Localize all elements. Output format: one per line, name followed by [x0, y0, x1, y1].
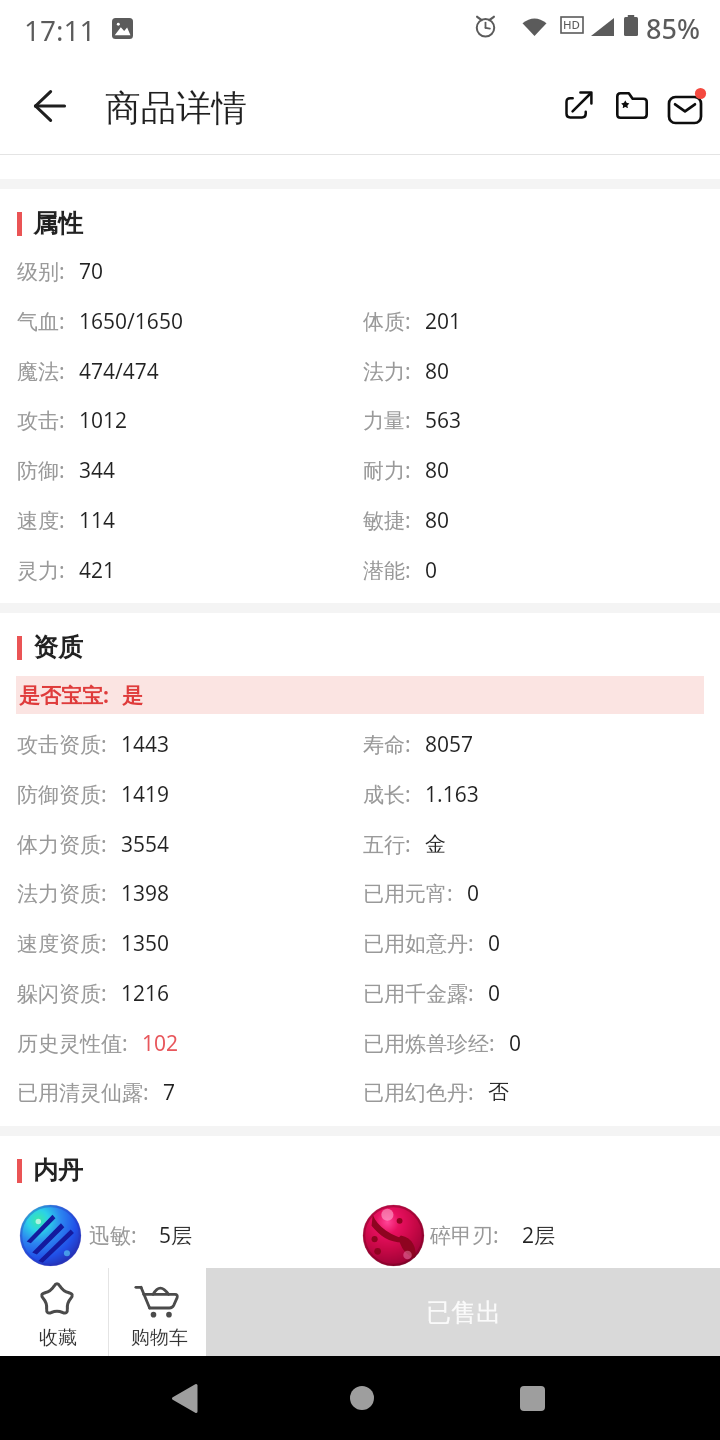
button[interactable]: 收藏: [0, 1268, 108, 1356]
staticText: 成长:: [363, 780, 411, 809]
staticText: 潜能:: [363, 556, 411, 585]
staticText: 114: [79, 506, 116, 535]
staticText: 3554: [121, 830, 170, 859]
staticText: 攻击资质:: [17, 730, 107, 759]
staticText: 魔法:: [17, 357, 65, 386]
button[interactable]: Share: [551, 75, 606, 135]
staticText: 躲闪资质:: [17, 979, 107, 1008]
staticText: 5层: [159, 1221, 193, 1250]
staticText: 70: [79, 257, 104, 286]
staticText: 已用幻色丹:: [363, 1078, 474, 1107]
staticText: 80: [425, 456, 450, 485]
button[interactable]: 购物车: [109, 1268, 206, 1356]
staticText: 8057: [425, 730, 474, 759]
staticText: 0: [425, 556, 438, 585]
staticText: 0: [488, 929, 501, 958]
staticText: 金: [425, 831, 446, 857]
staticText: 474/474: [79, 357, 159, 386]
staticText: 五行:: [363, 830, 411, 859]
staticText: 1350: [121, 929, 170, 958]
staticText: 灵力:: [17, 556, 65, 585]
staticText: 1.163: [425, 780, 479, 809]
staticText: 耐力:: [363, 456, 411, 485]
staticText: 碎甲刃:: [430, 1221, 499, 1250]
staticText: 0: [488, 979, 501, 1008]
staticText: 421: [79, 556, 116, 585]
staticText: 85%: [646, 10, 700, 47]
staticText: 迅敏:: [89, 1221, 137, 1250]
staticText: 级别:: [17, 257, 65, 286]
staticText: 已用元宵:: [363, 879, 453, 908]
button[interactable]: Favorites: [604, 75, 659, 135]
staticText: 1419: [121, 780, 170, 809]
button[interactable]: Recents: [500, 1366, 564, 1430]
staticText: 是否宝宝:: [19, 681, 109, 710]
button[interactable]: Messages: [657, 71, 713, 137]
staticText: 80: [425, 357, 450, 386]
staticText: 体力资质:: [17, 830, 107, 859]
staticText: 80: [425, 506, 450, 535]
staticText: 1216: [121, 979, 170, 1008]
staticText: 1398: [121, 879, 170, 908]
staticText: 已用千金露:: [363, 979, 474, 1008]
staticText: 体质:: [363, 307, 411, 336]
staticText: 已用清灵仙露:: [17, 1078, 149, 1107]
staticText: 历史灵性值:: [17, 1029, 128, 1058]
staticText: 已用如意丹:: [363, 929, 474, 958]
staticText: 购物车: [131, 1326, 188, 1350]
staticText: 攻击:: [17, 406, 65, 435]
staticText: 7: [163, 1078, 176, 1107]
staticText: 寿命:: [363, 730, 411, 759]
staticText: 2层: [522, 1221, 556, 1250]
staticText: 力量:: [363, 406, 411, 435]
staticText: 商品详情: [105, 86, 247, 131]
staticText: 1012: [79, 406, 128, 435]
staticText: 收藏: [39, 1326, 77, 1350]
staticText: 已售出: [426, 1297, 501, 1328]
staticText: 102: [142, 1029, 179, 1058]
staticText: 速度资质:: [17, 929, 107, 958]
staticText: 1650/1650: [79, 307, 183, 336]
staticText: 344: [79, 456, 116, 485]
staticText: 1443: [121, 730, 170, 759]
staticText: 防御:: [17, 456, 65, 485]
staticText: 属性: [33, 208, 83, 239]
button[interactable]: Back: [152, 1366, 216, 1430]
staticText: 否: [488, 1079, 509, 1105]
staticText: 资质: [33, 632, 83, 663]
staticText: 是: [122, 683, 143, 709]
staticText: 已用炼兽珍经:: [363, 1029, 495, 1058]
staticText: 17:11: [24, 11, 96, 49]
staticText: 0: [509, 1029, 522, 1058]
staticText: 防御资质:: [17, 780, 107, 809]
staticText: 法力资质:: [17, 879, 107, 908]
staticText: 内丹: [33, 1155, 83, 1186]
staticText: 气血:: [17, 307, 65, 336]
staticText: 563: [425, 406, 462, 435]
staticText: 法力:: [363, 357, 411, 386]
staticText: 敏捷:: [363, 506, 411, 535]
staticText: 速度:: [17, 506, 65, 535]
staticText: HD: [563, 17, 581, 33]
button[interactable]: Home: [330, 1366, 394, 1430]
button[interactable]: 已售出: [206, 1268, 720, 1356]
staticText: 0: [467, 879, 480, 908]
button[interactable]: Back: [15, 71, 84, 140]
staticText: 201: [425, 307, 462, 336]
